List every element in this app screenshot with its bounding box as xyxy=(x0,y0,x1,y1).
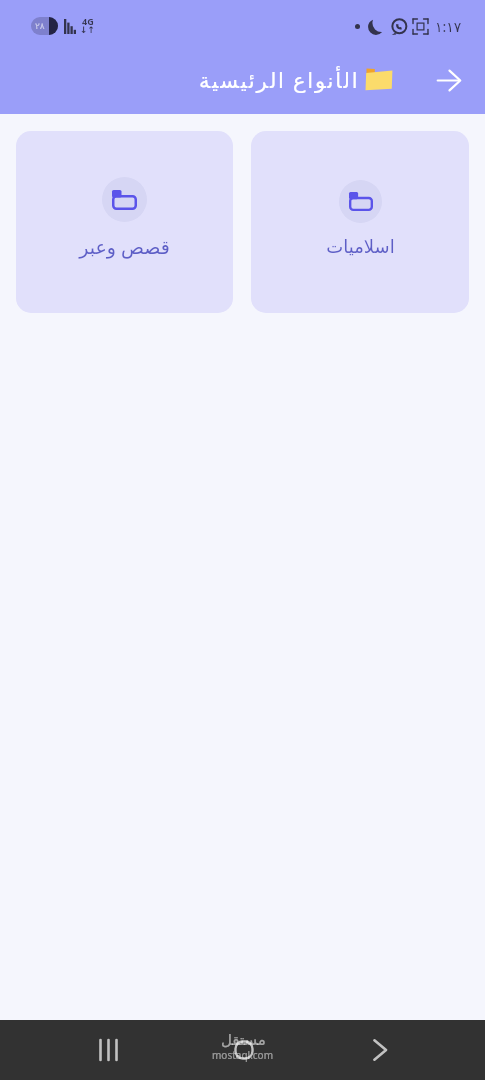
button[interactable]: Back xyxy=(356,1026,404,1074)
staticText: ٢٨ xyxy=(35,21,45,31)
staticText: mostaql.com xyxy=(212,1048,274,1062)
staticText: 4G xyxy=(82,15,94,27)
staticText: اسلاميات xyxy=(326,236,395,257)
staticText: مستقل xyxy=(221,1031,266,1048)
staticText: ↓↑ xyxy=(80,25,96,35)
staticText: قصص وعبر xyxy=(79,234,170,260)
button[interactable]: قصص وعبر xyxy=(16,131,233,313)
button[interactable]: Home xyxy=(220,1026,268,1074)
button[interactable]: اسلاميات xyxy=(251,131,469,313)
button[interactable]: Back xyxy=(427,58,471,102)
staticText: الأنواع الرئيسية xyxy=(199,66,360,95)
button[interactable]: Recent apps xyxy=(84,1026,132,1074)
staticText: ١:١٧ xyxy=(435,17,462,36)
